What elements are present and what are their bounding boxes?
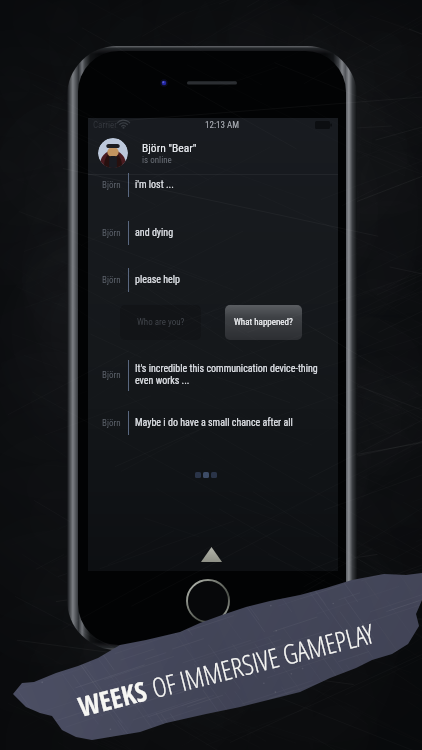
staticText: WEEKS: [74, 672, 151, 725]
button[interactable]: Björn: [88, 267, 338, 293]
button[interactable]: Björn: [88, 410, 338, 436]
staticText: Björn: [102, 228, 121, 239]
staticText: i'm lost ...: [135, 179, 174, 191]
staticText: Björn: [102, 275, 121, 286]
staticText: It's incredible this communication devic…: [135, 363, 318, 375]
staticText: Who are you?: [137, 317, 185, 328]
staticText: Björn: [102, 418, 121, 429]
button[interactable]: Björn: [88, 359, 338, 391]
button[interactable]: Continue: [198, 543, 225, 566]
button[interactable]: Who are you?: [120, 305, 201, 340]
staticText: is online: [142, 155, 172, 166]
button[interactable]: What happened?: [225, 305, 302, 340]
staticText: even works ...: [135, 375, 190, 387]
button[interactable]: Björn "Bear": [88, 132, 338, 174]
button[interactable]: Björn: [88, 172, 338, 198]
staticText: Björn "Bear": [142, 141, 197, 154]
staticText: Björn: [102, 180, 121, 191]
staticText: Carrier: [93, 120, 117, 131]
staticText: please help: [135, 274, 180, 286]
staticText: What happened?: [234, 317, 293, 328]
staticText: Björn: [102, 370, 121, 381]
staticText: and dying: [135, 227, 174, 239]
staticText: OF IMMERSIVE GAMEPLAY: [148, 614, 378, 706]
staticText: 12:13 AM: [205, 120, 239, 131]
staticText: Maybe i do have a small chance after all: [135, 417, 293, 429]
button[interactable]: Björn: [88, 220, 338, 246]
